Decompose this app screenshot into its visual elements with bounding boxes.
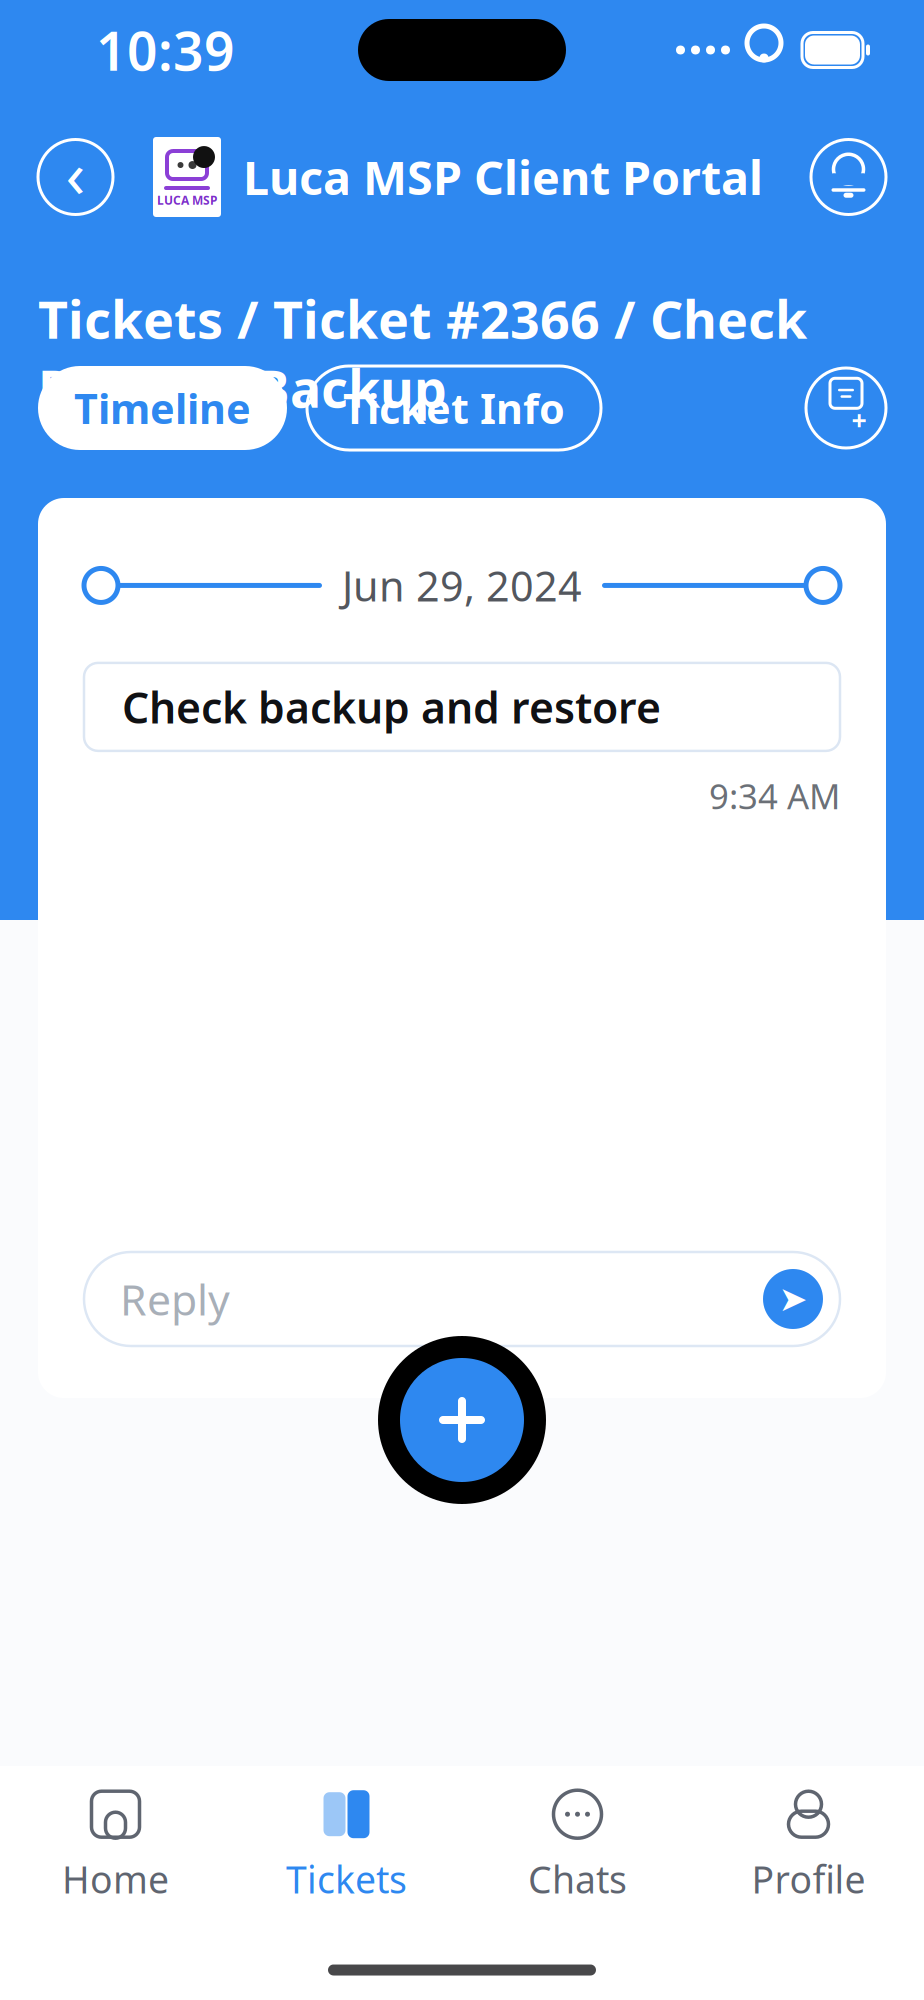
button[interactable]: Back [38,139,113,214]
staticText: Profile [751,1854,865,1904]
button[interactable]: Profile [693,1783,924,1909]
staticText: Ticket Info [343,381,565,435]
button[interactable]: Add [378,1336,546,1504]
staticText: LUCA MSP [157,192,217,208]
staticText: Tickets / Ticket #2366 / Check Remote Ba… [38,284,807,422]
button[interactable]: New note [806,368,886,448]
staticText: Timeline [74,381,251,435]
staticText: Luca MSP Client Portal [243,146,763,208]
button[interactable]: Send [763,1269,823,1329]
staticText: Home [62,1854,169,1904]
staticText: 10:39 [96,15,235,85]
button[interactable]: Timeline [38,366,287,450]
button[interactable]: Tickets [231,1783,462,1909]
staticText: 9:34 AM [709,773,840,819]
staticText: ‹ [65,130,85,215]
staticText: ➤ [778,1279,807,1319]
staticText: Check backup and restore [122,679,661,735]
staticText: Jun 29, 2024 [342,558,582,613]
button[interactable]: Chats [462,1783,693,1909]
staticText: Chats [528,1854,627,1904]
button[interactable]: Home [0,1783,231,1909]
staticText: Reply [120,1271,230,1327]
staticText: Tickets [286,1854,407,1904]
button[interactable]: Notifications [811,139,886,214]
staticText: + [851,402,866,438]
button[interactable]: Ticket Info [307,366,601,450]
